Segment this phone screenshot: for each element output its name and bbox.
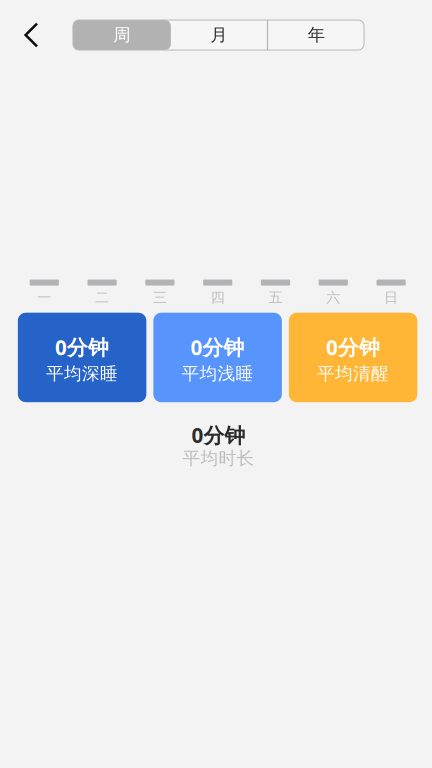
staticText: 五 — [268, 289, 282, 306]
button[interactable]: Back — [9, 18, 53, 52]
button[interactable]: 年 — [268, 20, 364, 50]
staticText: 平均深睡 — [46, 363, 118, 384]
staticText: 平均清醒 — [317, 363, 389, 384]
button[interactable]: 0分钟 — [18, 313, 146, 402]
staticText: 一 — [37, 289, 51, 306]
staticText: 二 — [95, 289, 109, 306]
staticText: 年 — [308, 24, 325, 46]
staticText: 0分钟 — [191, 421, 245, 449]
button[interactable]: 0分钟 — [153, 313, 282, 402]
staticText: 月 — [210, 24, 227, 46]
staticText: 0分钟 — [55, 333, 109, 361]
staticText: 平均时长 — [182, 448, 254, 469]
staticText: 四 — [211, 289, 225, 306]
staticText: 周 — [113, 24, 130, 46]
button[interactable]: 月 — [171, 20, 267, 50]
staticText: 日 — [384, 289, 398, 306]
staticText: 0分钟 — [191, 333, 245, 361]
staticText: 三 — [153, 289, 167, 306]
staticText: 平均浅睡 — [182, 363, 254, 384]
staticText: 六 — [326, 289, 340, 306]
button[interactable]: 0分钟 — [289, 313, 417, 402]
staticText: 0分钟 — [326, 333, 380, 361]
button[interactable]: 周 — [73, 20, 171, 50]
